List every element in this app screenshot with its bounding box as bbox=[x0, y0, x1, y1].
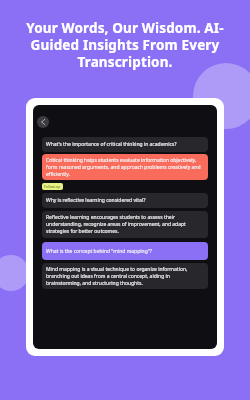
staticText: Why is reflective learning considered vi… bbox=[46, 197, 146, 204]
button[interactable]: Critical thinking helps students evaluat… bbox=[42, 154, 208, 180]
staticText: Mind mapping is a visual technique to or… bbox=[46, 266, 204, 287]
button[interactable]: Follow-up bbox=[42, 183, 63, 190]
staticText: What is the concept behind "mind mapping… bbox=[46, 248, 152, 255]
button[interactable]: What is the concept behind "mind mapping… bbox=[42, 242, 208, 260]
button[interactable]: Why is reflective learning considered vi… bbox=[42, 193, 208, 208]
button[interactable]: Back bbox=[37, 116, 49, 128]
staticText: Your Words, Our Wisdom. AI-Guided Insigh… bbox=[10, 19, 240, 71]
staticText: What's the importance of critical thinki… bbox=[46, 141, 177, 148]
button[interactable]: Mind mapping is a visual technique to or… bbox=[42, 263, 208, 289]
button[interactable]: What's the importance of critical thinki… bbox=[42, 137, 208, 152]
staticText: Follow-up bbox=[44, 184, 61, 189]
staticText: Reflective learning encourages students … bbox=[46, 214, 204, 235]
button[interactable]: Reflective learning encourages students … bbox=[42, 211, 208, 238]
staticText: Critical thinking helps students evaluat… bbox=[46, 157, 204, 178]
